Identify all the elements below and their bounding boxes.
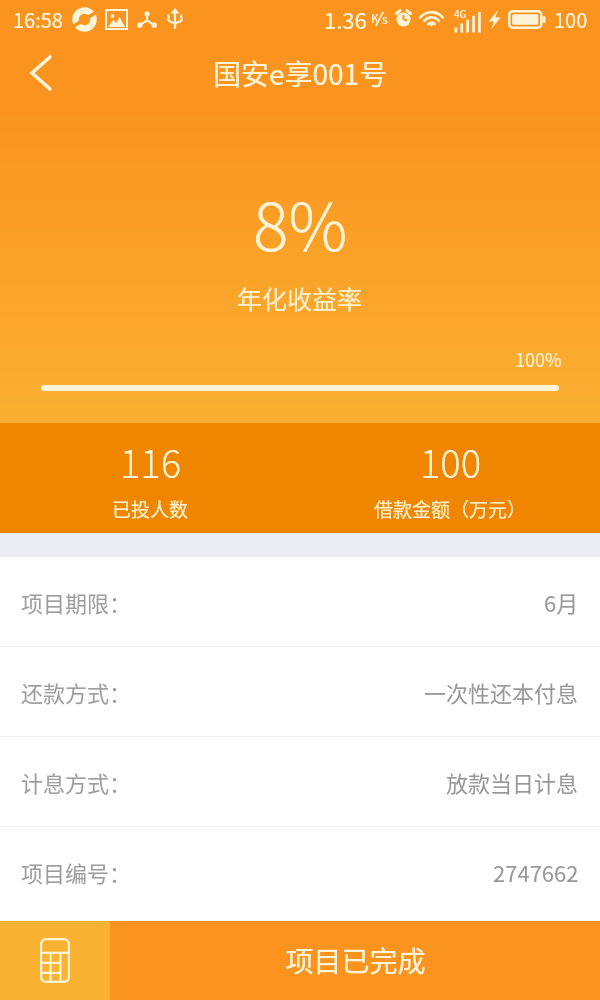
button[interactable]: Back (0, 38, 82, 108)
button[interactable]: 计息方式： (0, 737, 600, 826)
staticText: 项目编号： (21, 856, 132, 888)
staticText: 116 (120, 434, 181, 489)
staticText: 国安e享001号 (213, 53, 388, 94)
staticText: 已投人数 (112, 495, 189, 523)
staticText: 年化收益率 (237, 280, 363, 316)
staticText: 100% (515, 346, 562, 372)
staticText: s (382, 10, 388, 27)
staticText: 16:58 (13, 5, 63, 34)
staticText: 100 (420, 434, 481, 489)
button[interactable]: Calculator (0, 921, 110, 1000)
staticText: 1.36 (324, 3, 367, 35)
button[interactable]: 项目期限： (0, 557, 600, 646)
staticText: 8% (253, 174, 348, 270)
staticText: 项目期限： (21, 586, 132, 618)
staticText: 一次性还本付息 (424, 676, 579, 708)
staticText: 100 (554, 5, 588, 34)
button[interactable]: 还款方式： (0, 647, 600, 736)
staticText: 计息方式： (21, 766, 132, 798)
staticText: 2747662 (493, 856, 579, 888)
staticText: 借款金额（万元） (374, 495, 527, 523)
button[interactable]: 项目已完成 (110, 921, 600, 1000)
staticText: 还款方式： (21, 676, 132, 708)
staticText: 项目已完成 (285, 940, 426, 981)
staticText: K (371, 9, 379, 26)
staticText: 6月 (544, 586, 579, 618)
staticText: 放款当日计息 (446, 766, 579, 798)
staticText: 4G (454, 6, 467, 20)
button[interactable]: 项目编号： (0, 827, 600, 916)
